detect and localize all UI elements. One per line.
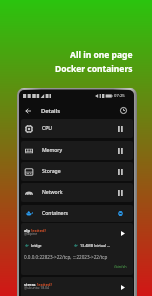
button[interactable]: Containers <box>21 205 133 222</box>
staticText: CPU <box>42 125 53 132</box>
button[interactable]: Back <box>22 105 33 116</box>
staticText: stress <box>24 282 36 287</box>
staticText: All in one page <box>70 49 133 61</box>
staticText: 07:25 <box>114 93 125 99</box>
button[interactable]: Start <box>118 229 127 238</box>
staticText: [exited] <box>37 282 52 287</box>
staticText: Details <box>41 107 61 115</box>
button[interactable]: Memory <box>21 141 133 160</box>
button[interactable]: Pause <box>116 146 125 155</box>
button[interactable]: History <box>118 105 129 116</box>
staticText: Docker containers <box>55 63 133 75</box>
button[interactable]: Pause <box>116 124 125 133</box>
staticText: @ubuntu:18.04 <box>24 285 50 290</box>
staticText: bridge <box>31 243 42 248</box>
staticText: Containers <box>42 210 69 217</box>
staticText: /bin/sh <box>114 264 127 269</box>
staticText: Memory <box>42 147 63 154</box>
button[interactable]: Pause <box>116 167 125 176</box>
button[interactable]: Storage <box>21 162 133 181</box>
button[interactable]: Start <box>118 283 127 292</box>
staticText: 13.4MB (virtual ... <box>80 243 111 248</box>
button[interactable]: Refresh <box>116 209 125 218</box>
staticText: @alpine <box>24 231 38 236</box>
staticText: [exited] <box>31 228 46 233</box>
button[interactable]: Network <box>21 183 133 202</box>
staticText: Network <box>42 189 63 196</box>
button[interactable]: Pause <box>116 188 125 197</box>
staticText: Storage <box>42 168 61 175</box>
button[interactable]: stress <box>21 277 133 296</box>
button[interactable]: alp <box>21 223 133 275</box>
button[interactable]: CPU <box>21 119 133 138</box>
staticText: alp <box>24 228 30 233</box>
staticText: 0.0.0.0:22823->22/tcp, :::22023->22/tcp <box>24 254 108 260</box>
